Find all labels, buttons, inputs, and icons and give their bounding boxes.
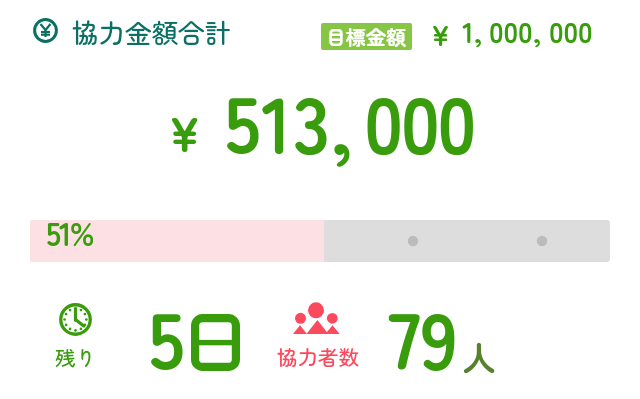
staticText: 人: [462, 332, 496, 381]
staticText: 残り: [55, 342, 96, 372]
button[interactable]: 目標金額: [321, 23, 412, 50]
staticText: ¥: [432, 14, 450, 55]
staticText: 協力金額合計: [72, 12, 231, 50]
staticText: 1,: [462, 9, 483, 51]
button[interactable]: Supporters: [293, 302, 340, 334]
staticText: 51%: [46, 220, 93, 251]
staticText: 79: [388, 280, 458, 393]
staticText: 000,: [489, 9, 542, 51]
staticText: ¥: [170, 96, 200, 166]
staticText: 000: [364, 64, 474, 177]
staticText: 513,: [224, 64, 354, 177]
staticText: 協力者数: [277, 341, 359, 371]
button[interactable]: Yen total: [33, 18, 58, 43]
staticText: 目標金額: [326, 23, 406, 49]
button[interactable]: Days remaining: [59, 303, 92, 336]
staticText: 000: [549, 9, 593, 51]
button[interactable]: 51%: [30, 220, 610, 262]
staticText: 5: [148, 280, 185, 393]
